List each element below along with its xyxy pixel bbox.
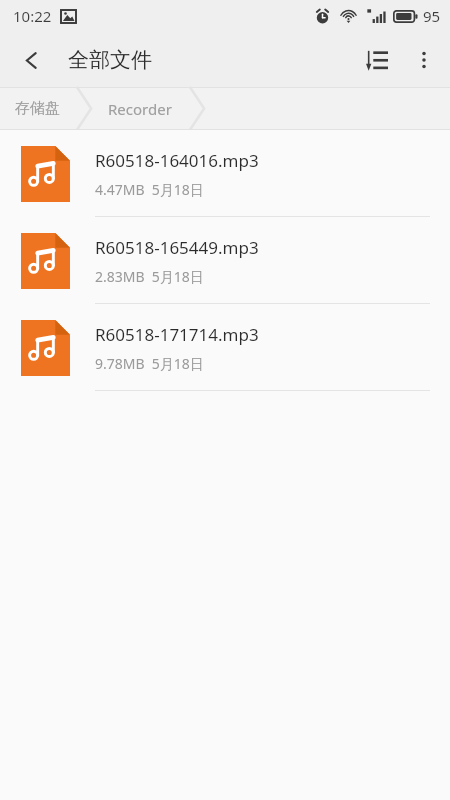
staticText: 10:22	[13, 6, 52, 26]
staticText: R60518-165449.mp3	[95, 236, 259, 259]
button[interactable]: Recorder	[92, 99, 188, 119]
button[interactable]: Back	[7, 36, 55, 84]
staticText: R60518-164016.mp3	[95, 149, 259, 172]
staticText: 全部文件	[68, 47, 152, 73]
button[interactable]: More options	[400, 36, 448, 84]
button[interactable]: Sort	[352, 36, 400, 84]
staticText: R60518-171714.mp3	[95, 323, 259, 346]
staticText: 95	[423, 6, 441, 26]
staticText: 存储盘	[15, 99, 60, 118]
staticText: 4.47MB 5月18日	[95, 180, 204, 199]
staticText: Recorder	[108, 99, 172, 119]
button[interactable]: R60518-164016.mp3	[0, 130, 450, 217]
button[interactable]: R60518-171714.mp3	[0, 304, 450, 391]
staticText: 2.83MB 5月18日	[95, 267, 204, 286]
staticText: 9.78MB 5月18日	[95, 354, 204, 373]
button[interactable]: 存储盘	[0, 99, 75, 118]
button[interactable]: R60518-165449.mp3	[0, 217, 450, 304]
